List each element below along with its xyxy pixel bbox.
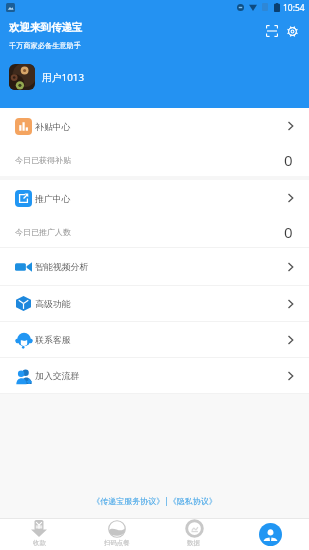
button[interactable]: 用户1013	[9, 64, 85, 90]
staticText: 今日已推广人数	[15, 227, 71, 237]
staticText: 高级功能	[35, 298, 71, 309]
staticText: 《传递宝服务协议》|《隐私协议》	[0, 495, 309, 506]
button[interactable]: 推广中心	[0, 180, 309, 216]
button[interactable]: 补贴中心	[0, 108, 309, 144]
button[interactable]: Scan QR code	[262, 21, 282, 41]
button[interactable]: 高级功能	[0, 286, 309, 321]
staticText: 数据	[187, 539, 200, 547]
button[interactable]: Settings	[282, 21, 302, 41]
staticText: 用户1013	[42, 71, 85, 84]
staticText: 收款	[33, 539, 46, 547]
staticText: 10:54	[283, 2, 305, 14]
button[interactable]: 数据	[155, 518, 232, 550]
staticText: 欢迎来到传递宝	[9, 21, 83, 34]
staticText: 扫码点餐	[104, 539, 130, 547]
staticText: 今日已获得补贴	[15, 155, 71, 165]
staticText: 补贴中心	[35, 121, 71, 132]
staticText: 0	[284, 222, 293, 242]
button[interactable]: 智能视频分析	[0, 248, 309, 285]
button[interactable]: 加入交流群	[0, 358, 309, 393]
button[interactable]: 收款	[0, 518, 78, 550]
button[interactable]: 扫码点餐	[78, 518, 155, 550]
staticText: 0	[284, 150, 293, 170]
staticText: 千万商家必备生意助手	[9, 41, 81, 50]
staticText: 加入交流群	[35, 370, 80, 381]
staticText: 推广中心	[35, 193, 71, 204]
staticText: 智能视频分析	[35, 261, 89, 272]
staticText: 联系客服	[35, 334, 71, 345]
button[interactable]: 联系客服	[0, 322, 309, 357]
button[interactable]: Profile	[232, 518, 309, 550]
